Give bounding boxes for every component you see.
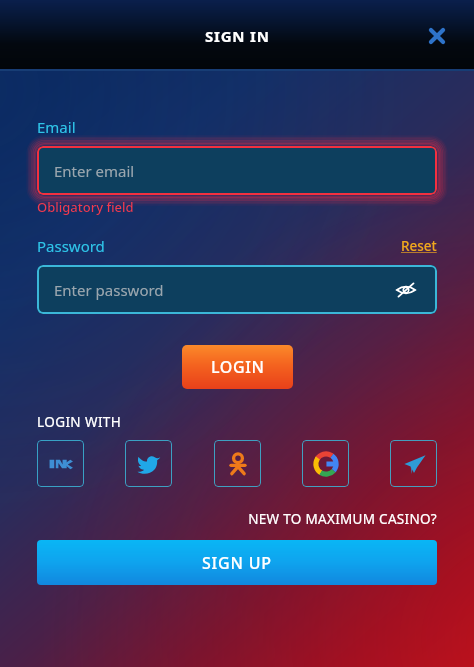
- staticText: LOGIN WITH: [37, 413, 122, 431]
- button[interactable]: Close: [422, 21, 452, 51]
- staticText: Email: [37, 117, 76, 137]
- button[interactable]: Odnoklassniki: [214, 440, 261, 487]
- button[interactable]: VK: [37, 440, 84, 487]
- button[interactable]: SIGN UP: [37, 540, 437, 585]
- button[interactable]: Reset: [401, 237, 437, 255]
- staticText: Obligatory field: [37, 198, 134, 216]
- button[interactable]: Enter password: [37, 265, 437, 314]
- button[interactable]: Enter email: [37, 146, 437, 195]
- button[interactable]: LOGIN: [182, 345, 293, 389]
- staticText: Password: [37, 236, 105, 256]
- staticText: Enter password: [54, 280, 164, 300]
- button[interactable]: Show password: [392, 276, 420, 304]
- button[interactable]: Telegram: [390, 440, 437, 487]
- staticText: SIGN UP: [202, 552, 272, 574]
- staticText: LOGIN: [211, 356, 265, 378]
- staticText: SIGN IN: [205, 26, 270, 46]
- button[interactable]: Google: [302, 440, 349, 487]
- staticText: Reset: [401, 237, 437, 255]
- staticText: Enter email: [54, 161, 135, 181]
- staticText: NEW TO MAXIMUM CASINO?: [37, 510, 437, 528]
- button[interactable]: Twitter: [125, 440, 172, 487]
